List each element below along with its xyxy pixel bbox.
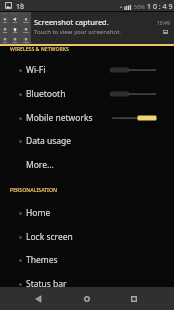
button[interactable]: Wi-Fi [0, 13, 10, 23]
button[interactable]: Home [81, 293, 93, 305]
staticText: Status bar [26, 278, 67, 290]
staticText: Wi-Fi [26, 64, 46, 76]
staticText: Data usage [26, 135, 72, 147]
button[interactable]: Lock screen [0, 225, 174, 249]
staticText: Mobile networks [26, 112, 93, 124]
staticText: Themes [26, 254, 58, 266]
button[interactable]: Back [32, 293, 44, 305]
button[interactable]: Status bar [0, 272, 174, 296]
button[interactable]: Location [0, 33, 10, 43]
button[interactable]: More... [0, 153, 174, 177]
staticText: 10:49 [157, 20, 170, 27]
button[interactable]: Screen record [21, 23, 31, 33]
button[interactable]: Screenshot captured notification [0, 12, 174, 44]
button[interactable]: Themes [0, 248, 174, 272]
staticText: Bluetooth [26, 88, 66, 100]
staticText: More... [26, 159, 54, 171]
staticText: 18 [16, 2, 25, 12]
button[interactable]: Wi-Fi [0, 58, 174, 82]
button[interactable]: Airplane [21, 33, 31, 43]
button[interactable]: Home [0, 201, 174, 225]
button[interactable]: Mobile networks [0, 106, 174, 130]
staticText: Lock screen [26, 231, 73, 243]
staticText: Touch to view your screenshot. [34, 28, 121, 36]
button[interactable]: Mobile networks on [110, 112, 157, 124]
staticText: Screenshot captured. [34, 17, 109, 27]
button[interactable]: Mobile data [10, 33, 20, 43]
button[interactable]: Sound [10, 13, 20, 23]
button[interactable]: Auto-rotate [21, 13, 31, 23]
button[interactable]: Recent apps [128, 293, 140, 305]
button[interactable]: Data usage [0, 129, 174, 153]
staticText: WIRELESS & NETWORKS [10, 45, 69, 52]
button[interactable]: Torch [10, 23, 20, 33]
button[interactable]: Wi-Fi off [110, 64, 157, 76]
button[interactable]: Bluetooth [0, 82, 174, 106]
button[interactable]: Bluetooth [0, 23, 10, 33]
staticText: Home [26, 207, 51, 219]
button[interactable]: Bluetooth off [110, 88, 157, 100]
staticText: 50% [134, 3, 145, 10]
staticText: PERSONALISATION [10, 186, 58, 193]
staticText: 10:49 [147, 2, 174, 12]
